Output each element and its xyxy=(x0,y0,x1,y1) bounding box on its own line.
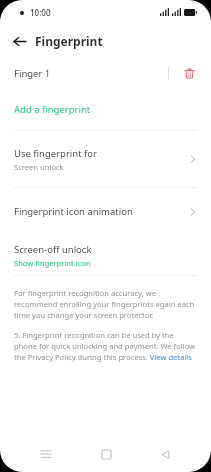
staticText: Fingerprint icon animation xyxy=(14,205,133,218)
button[interactable]: Screen-off unlock xyxy=(0,235,211,275)
button[interactable]: Delete fingerprint xyxy=(179,63,199,83)
staticText: Fingerprint xyxy=(35,33,103,49)
staticText: Finger 1 xyxy=(14,67,168,80)
button[interactable]: Fingerprint icon animation xyxy=(0,188,211,235)
staticText: 5. Fingerprint recognition can be used b… xyxy=(14,330,197,362)
staticText: Use fingerprint for xyxy=(14,147,97,160)
button[interactable]: Add a fingerprint xyxy=(0,100,211,118)
button[interactable]: Back xyxy=(10,32,28,50)
button[interactable]: Home xyxy=(92,440,120,468)
staticText: Show fingerprint icon xyxy=(14,258,91,268)
staticText: For fingerprint recognition accuracy, we… xyxy=(14,288,197,320)
staticText: 10:00 xyxy=(30,7,51,18)
staticText: Add a fingerprint xyxy=(14,103,91,116)
button[interactable]: Use fingerprint for xyxy=(0,131,211,187)
button[interactable]: Finger 1 xyxy=(0,60,211,86)
button[interactable]: Back xyxy=(151,440,179,468)
staticText: Screen unlock xyxy=(14,162,64,172)
button[interactable]: Recent apps xyxy=(32,440,60,468)
staticText: Screen-off unlock xyxy=(14,243,92,256)
